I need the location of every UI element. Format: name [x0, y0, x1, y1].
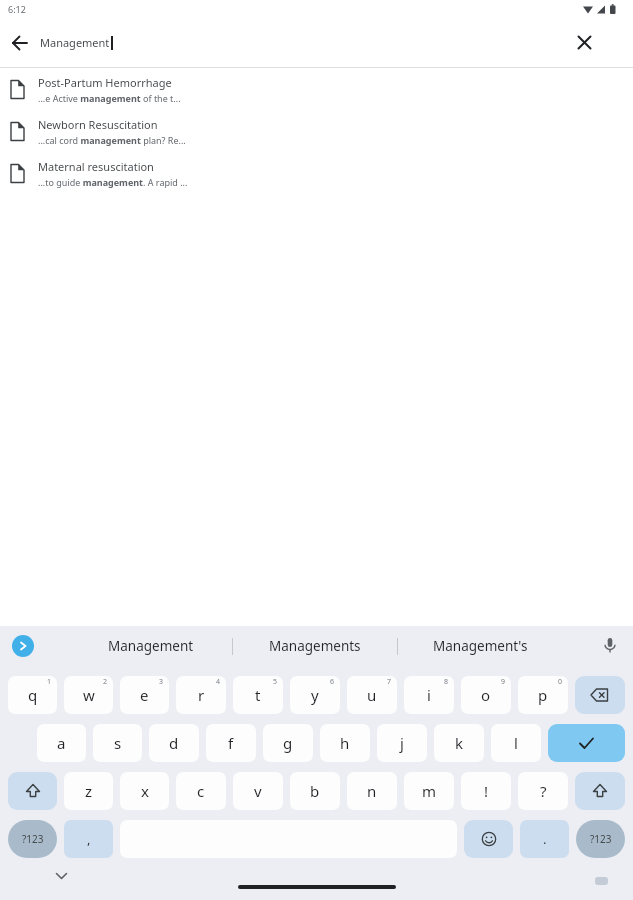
button[interactable] [8, 772, 57, 810]
button[interactable] [12, 635, 34, 657]
button[interactable]: q [8, 676, 57, 714]
staticText: p [538, 685, 548, 705]
staticText: i [427, 685, 431, 705]
staticText: ! [484, 781, 489, 801]
button[interactable]: r [176, 676, 226, 714]
staticText: g [283, 733, 293, 753]
button[interactable] [603, 637, 617, 656]
button[interactable]: ? [518, 772, 568, 810]
button[interactable]: h [320, 724, 370, 762]
staticText: Management's [433, 637, 528, 655]
button[interactable]: Newborn Resuscitation [0, 110, 633, 152]
staticText: u [367, 685, 377, 705]
staticText: 9 [501, 677, 506, 687]
button[interactable]: u [347, 676, 397, 714]
button[interactable] [548, 724, 625, 762]
staticText: . [543, 830, 547, 848]
button[interactable]: l [491, 724, 541, 762]
staticText: Maternal resuscitation [38, 159, 154, 174]
staticText: ? [540, 781, 547, 801]
staticText: 0 [558, 677, 563, 687]
staticText: l [514, 733, 518, 753]
button[interactable] [575, 676, 625, 714]
staticText: y [311, 685, 319, 705]
button[interactable]: a [37, 724, 86, 762]
staticText: z [85, 781, 93, 801]
button[interactable]: . [520, 820, 569, 858]
button[interactable]: k [434, 724, 484, 762]
staticText: e [140, 685, 149, 705]
button[interactable] [575, 772, 625, 810]
staticText: m [422, 781, 437, 801]
button[interactable]: w [64, 676, 113, 714]
staticText: s [114, 733, 122, 753]
staticText: 5 [273, 677, 278, 687]
staticText: Managements [269, 637, 361, 655]
button[interactable]: Post-Partum Hemorrhage [0, 68, 633, 110]
button[interactable]: i [404, 676, 454, 714]
staticText: h [340, 733, 350, 753]
staticText: ?123 [22, 832, 44, 846]
staticText: 3 [159, 677, 164, 687]
button[interactable]: Management [69, 626, 232, 666]
button[interactable]: ?123 [8, 820, 57, 858]
staticText: x [141, 781, 149, 801]
staticText: 6:12 [8, 3, 26, 15]
button[interactable]: t [233, 676, 283, 714]
staticText: c [197, 781, 205, 801]
staticText: 1 [47, 677, 52, 687]
staticText: a [57, 733, 66, 753]
button[interactable]: ! [461, 772, 511, 810]
button[interactable]: v [233, 772, 283, 810]
button[interactable]: e [120, 676, 169, 714]
button[interactable]: b [290, 772, 340, 810]
staticText: f [228, 733, 234, 753]
staticText: 6 [330, 677, 335, 687]
button[interactable]: ?123 [576, 820, 625, 858]
button[interactable]: j [377, 724, 427, 762]
button[interactable] [464, 820, 513, 858]
staticText: Management [108, 637, 194, 655]
staticText: 2 [103, 677, 108, 687]
staticText: ?123 [590, 832, 612, 846]
button[interactable]: Management's [398, 626, 562, 666]
button[interactable]: x [120, 772, 169, 810]
button[interactable] [563, 24, 605, 61]
button[interactable]: g [263, 724, 313, 762]
staticText: b [310, 781, 320, 801]
staticText: , [87, 830, 91, 848]
staticText: w [83, 685, 95, 705]
button[interactable]: z [64, 772, 113, 810]
staticText: k [455, 733, 464, 753]
button[interactable]: p [518, 676, 568, 714]
button[interactable]: s [93, 724, 142, 762]
button[interactable]: , [64, 820, 113, 858]
staticText: d [169, 733, 179, 753]
button[interactable]: Maternal resuscitation [0, 152, 633, 194]
staticText: r [198, 685, 205, 705]
staticText: n [367, 781, 377, 801]
staticText: ...e Active management of the t... [38, 92, 181, 104]
button[interactable] [0, 24, 40, 61]
staticText: t [255, 685, 261, 705]
staticText: v [254, 781, 262, 801]
staticText: 8 [444, 677, 449, 687]
button[interactable]: Managements [233, 626, 397, 666]
staticText: q [28, 685, 38, 705]
button[interactable]: f [206, 724, 256, 762]
button[interactable]: o [461, 676, 511, 714]
button[interactable]: m [404, 772, 454, 810]
staticText: ...cal cord management plan? Re... [38, 134, 186, 146]
staticText: 7 [387, 677, 392, 687]
staticText: ...to guide management. A rapid ... [38, 176, 188, 188]
staticText: Newborn Resuscitation [38, 117, 158, 132]
staticText: Post-Partum Hemorrhage [38, 75, 172, 90]
button[interactable]: y [290, 676, 340, 714]
button[interactable]: n [347, 772, 397, 810]
button[interactable]: d [149, 724, 199, 762]
staticText: o [481, 685, 491, 705]
staticText: Management [40, 35, 110, 50]
button[interactable]: c [176, 772, 226, 810]
staticText: 4 [216, 677, 221, 687]
